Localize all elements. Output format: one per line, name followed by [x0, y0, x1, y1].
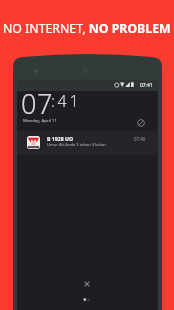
button[interactable]: Do not disturb [135, 117, 147, 129]
staticText: 07 [21, 85, 54, 122]
staticText: Umur Aki Anda 3 tahun 3 bulan [47, 142, 106, 147]
button[interactable]: B 1928 UO [17, 131, 158, 155]
staticText: 07:41 [140, 82, 153, 89]
staticText: NO INTERNET, NO PROBLEM [3, 20, 171, 37]
staticText: Monday, April 11 [23, 117, 57, 123]
staticText: 07:40 [134, 136, 146, 142]
button[interactable]: Dismiss [81, 278, 93, 290]
staticText: :41 [51, 90, 82, 112]
staticText: B 1928 UO [47, 135, 74, 142]
